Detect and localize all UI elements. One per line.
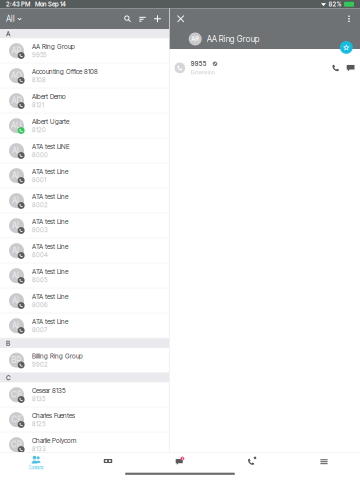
staticText: ATA test Line [32, 193, 68, 200]
staticText: ATA test Line [32, 293, 68, 300]
button[interactable]: AL [0, 163, 169, 188]
button[interactable]: AL [0, 213, 169, 238]
staticText: ATA test Line [32, 243, 68, 250]
staticText: AL [12, 196, 21, 205]
button[interactable]: CP [0, 432, 169, 457]
staticText: AL [12, 146, 21, 155]
button[interactable]: AL [0, 263, 169, 288]
staticText: AL [12, 321, 21, 330]
button[interactable]: All [0, 8, 28, 29]
staticText: CB [11, 390, 22, 399]
staticText: AL [12, 221, 21, 230]
button[interactable]: CB [0, 382, 169, 407]
staticText: Accounting Office 8108 [32, 68, 98, 75]
staticText: CF [11, 415, 21, 424]
staticText: Contacts [28, 465, 43, 470]
staticText: Albert Demo [32, 93, 66, 100]
staticText: 9955 [191, 60, 207, 67]
staticText: 8001 [32, 176, 46, 184]
staticText: 8121 [32, 101, 44, 109]
button[interactable]: AD [0, 88, 169, 113]
staticText: 8005 [32, 276, 47, 284]
staticText: Albert Ugarte [32, 118, 69, 125]
staticText: 8133 [32, 445, 46, 453]
staticText: ATA test Line [32, 318, 68, 325]
staticText: AR [191, 35, 199, 43]
staticText: ATA test Line [32, 268, 68, 275]
button[interactable]: Close [173, 8, 189, 29]
staticText: Charles Fuentes [32, 412, 75, 419]
staticText: AU [11, 121, 22, 130]
button[interactable]: BR [0, 348, 169, 373]
staticText: 2 [181, 456, 183, 461]
button[interactable]: Call [328, 60, 343, 75]
staticText: AL [12, 171, 21, 180]
button[interactable]: Voicemail [72, 453, 144, 480]
button[interactable]: AL [0, 313, 169, 338]
button[interactable]: More [288, 453, 360, 480]
staticText: 8002 [32, 201, 48, 209]
button[interactable]: AO [0, 63, 169, 88]
button[interactable]: Calls [216, 453, 288, 480]
staticText: B [6, 339, 10, 347]
staticText: BR [11, 355, 21, 365]
button[interactable]: AL [0, 188, 169, 213]
staticText: AO [11, 71, 22, 80]
staticText: 8108 [32, 76, 46, 84]
staticText: All [6, 14, 15, 24]
staticText: AA Ring Group [32, 43, 75, 50]
button[interactable]: Contacts [0, 453, 72, 480]
staticText: 8003 [32, 226, 48, 234]
staticText: 8000 [32, 151, 48, 159]
staticText: 82% [328, 0, 341, 8]
staticText: 8007 [32, 326, 47, 334]
staticText: 8135 [32, 395, 45, 403]
staticText: Billing Ring Group [32, 352, 83, 360]
staticText: AL [12, 246, 21, 255]
staticText: ATA test Line [32, 168, 68, 175]
staticText: AL [12, 296, 21, 305]
staticText: AL [12, 271, 21, 280]
staticText: ATA test LINE [32, 143, 70, 150]
staticText: C [6, 374, 11, 382]
staticText: ATA test Line [32, 218, 68, 225]
staticText: 2:43 PM [6, 0, 30, 8]
button[interactable]: Messages [144, 453, 216, 480]
button[interactable]: AL [0, 288, 169, 313]
button[interactable]: CF [0, 407, 169, 432]
staticText: 8125 [32, 420, 45, 428]
button[interactable]: Favorite [340, 41, 353, 54]
button[interactable]: Search [120, 8, 135, 29]
staticText: Extension [191, 69, 215, 76]
staticText: CP [11, 440, 22, 449]
staticText: AD [11, 96, 21, 105]
button[interactable]: Add contact [150, 8, 165, 29]
button[interactable]: AL [0, 138, 169, 163]
staticText: Mon Sep 14 [35, 0, 66, 8]
button[interactable]: AR [0, 38, 169, 63]
staticText: 9902 [32, 361, 48, 368]
button[interactable]: Sort [135, 8, 150, 29]
button[interactable]: AL [0, 238, 169, 263]
staticText: 8120 [32, 126, 46, 134]
staticText: 8004 [32, 251, 48, 259]
staticText: A [6, 30, 10, 38]
button[interactable]: Message [343, 60, 358, 75]
staticText: AR [11, 46, 21, 55]
staticText: Charlie Polycom [32, 437, 76, 444]
staticText: Cesear 8135 [32, 387, 66, 394]
staticText: AA Ring Group [207, 34, 260, 44]
staticText: 9955 [32, 51, 46, 59]
button[interactable]: AU [0, 113, 169, 138]
staticText: 8006 [32, 301, 48, 309]
button[interactable]: More options [341, 8, 357, 29]
